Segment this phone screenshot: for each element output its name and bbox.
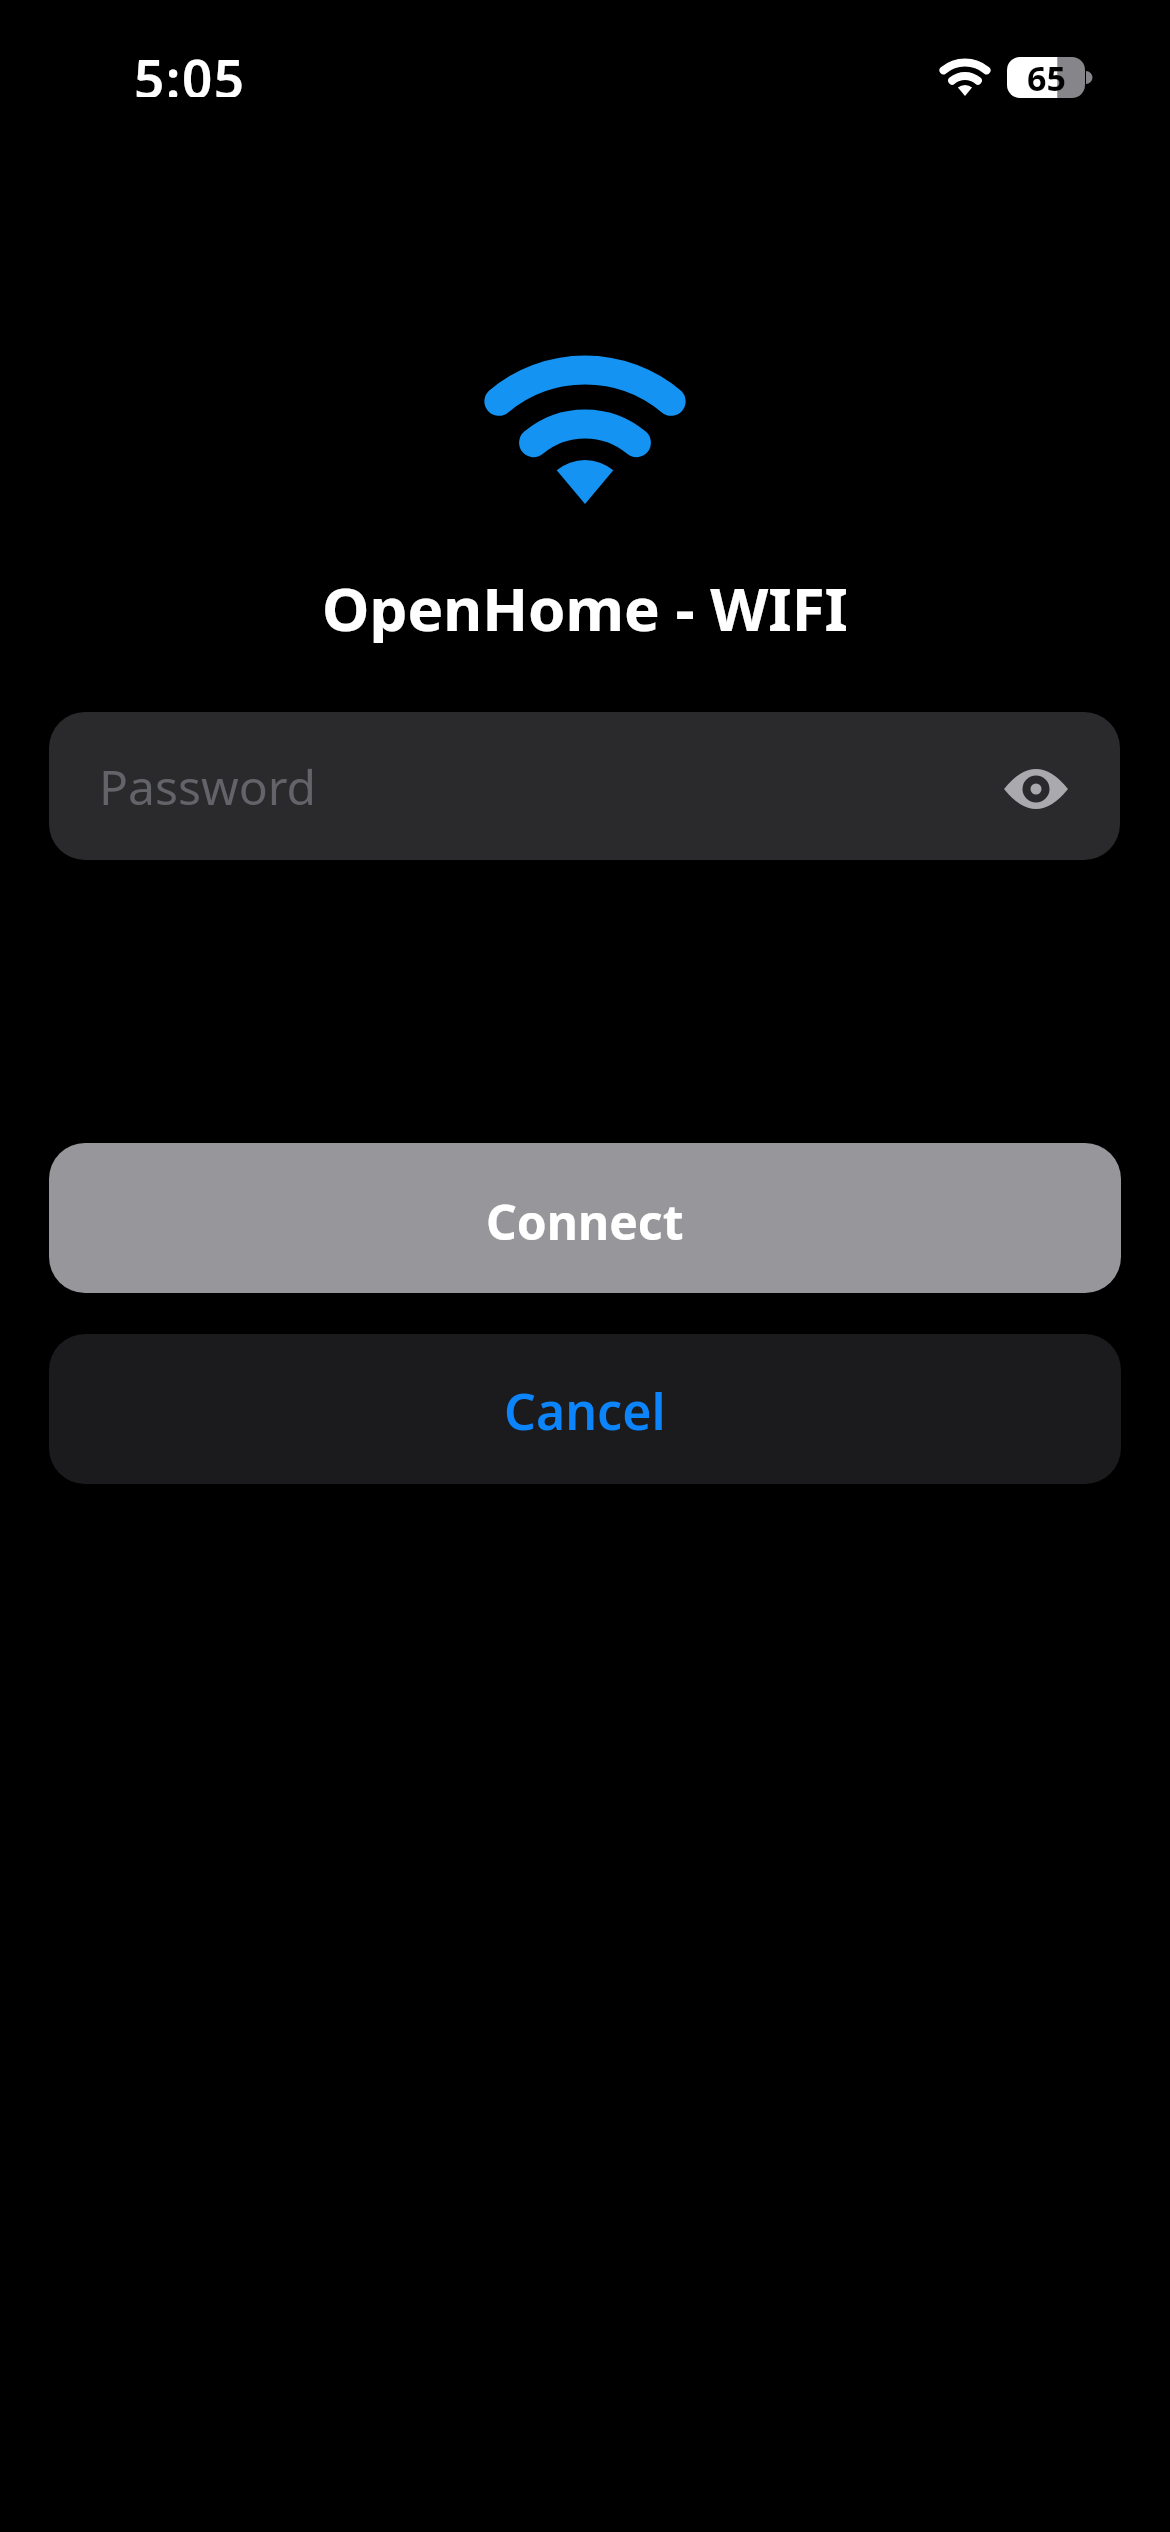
staticText: Connect — [486, 1189, 684, 1254]
staticText: 5:05 — [134, 41, 246, 97]
staticText: OpenHome - WIFI — [322, 567, 848, 643]
button[interactable]: Cancel — [49, 1334, 1121, 1484]
button[interactable]: Connect — [49, 1143, 1121, 1293]
button[interactable] — [1003, 767, 1069, 811]
staticText: Password — [99, 754, 317, 819]
staticText: 65 — [1027, 55, 1066, 101]
button[interactable]: Password — [49, 712, 1120, 860]
staticText: Cancel — [504, 1377, 666, 1445]
